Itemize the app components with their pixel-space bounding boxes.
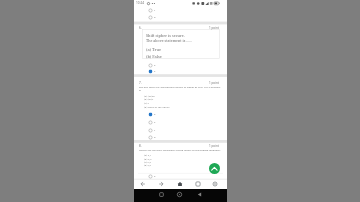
staticText: a bbox=[154, 64, 156, 67]
staticText: The key space for substitution cipher of… bbox=[139, 85, 221, 88]
staticText: (c) 2 bbox=[144, 101, 150, 104]
staticText: (d) t,a bbox=[144, 163, 151, 166]
staticText: a bbox=[154, 113, 156, 116]
staticText: c bbox=[154, 9, 156, 12]
staticText: 6. bbox=[139, 26, 142, 30]
button[interactable]: a bbox=[147, 173, 157, 180]
staticText: (a) (26)m bbox=[144, 94, 155, 97]
staticText: The above statement is ...... bbox=[146, 38, 192, 43]
button[interactable]: b bbox=[147, 68, 157, 75]
button[interactable]: a bbox=[147, 111, 157, 118]
staticText: 1 point bbox=[209, 26, 219, 30]
staticText: b bbox=[154, 70, 156, 73]
staticText: is bbox=[139, 88, 141, 91]
staticText: (a) True bbox=[146, 47, 162, 52]
staticText: Shift cipher is secure. bbox=[146, 33, 185, 38]
button[interactable] bbox=[158, 181, 164, 187]
button[interactable]: c bbox=[147, 7, 157, 14]
staticText: c bbox=[154, 129, 156, 132]
staticText: (b) a,o bbox=[144, 157, 152, 160]
staticText: 10:24 bbox=[136, 1, 145, 5]
staticText: (c) e,a bbox=[144, 160, 151, 163]
staticText: 1 point bbox=[209, 144, 219, 148]
button[interactable] bbox=[140, 181, 146, 187]
staticText: 7. bbox=[139, 81, 142, 85]
button[interactable]: c bbox=[147, 127, 157, 134]
button[interactable]: d bbox=[147, 14, 157, 21]
staticText: b bbox=[154, 121, 156, 124]
staticText: Which are the most frequently found lett… bbox=[139, 148, 221, 151]
button[interactable] bbox=[212, 181, 218, 187]
button[interactable] bbox=[209, 163, 220, 174]
button[interactable] bbox=[195, 181, 201, 187]
button[interactable]: b bbox=[147, 119, 157, 126]
button[interactable] bbox=[174, 189, 185, 202]
staticText: d bbox=[154, 16, 156, 19]
button[interactable] bbox=[177, 181, 183, 187]
staticText: (b) (26)! bbox=[144, 97, 154, 100]
button[interactable]: d bbox=[147, 134, 157, 141]
button[interactable] bbox=[194, 189, 205, 202]
staticText: (a) e,t bbox=[144, 153, 151, 156]
staticText: (b) False bbox=[146, 54, 162, 59]
staticText: 8. bbox=[139, 144, 142, 148]
button[interactable] bbox=[156, 189, 167, 202]
staticText: d bbox=[154, 136, 156, 139]
button[interactable]: a bbox=[147, 62, 157, 69]
staticText: 1 point bbox=[209, 81, 219, 85]
staticText: a bbox=[154, 175, 156, 178]
staticText: (d) None of the above bbox=[144, 105, 170, 108]
